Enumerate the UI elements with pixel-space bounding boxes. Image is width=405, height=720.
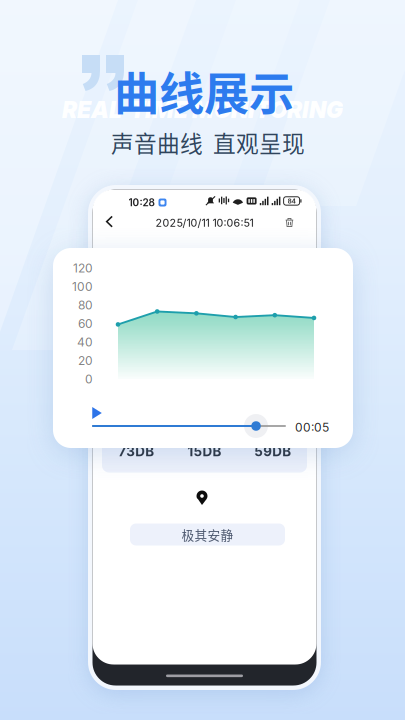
staticText: 曲线展示 bbox=[114, 58, 294, 124]
staticText: 20 bbox=[78, 353, 93, 368]
staticText: 84 bbox=[288, 197, 296, 205]
button[interactable]: Back bbox=[98, 210, 120, 232]
staticText: 73DB bbox=[118, 443, 154, 459]
staticText: 声音曲线 直观呈现 bbox=[111, 126, 305, 159]
staticText: 40 bbox=[77, 335, 93, 349]
staticText: 10:28 bbox=[128, 196, 154, 209]
staticText: REAL-TIME MONITORING bbox=[62, 96, 343, 123]
staticText: 100 bbox=[72, 279, 93, 294]
staticText: 80 bbox=[78, 298, 93, 312]
button[interactable]: Play bbox=[86, 402, 108, 424]
staticText: 极其安静 bbox=[181, 525, 233, 544]
staticText: 00:05 bbox=[295, 420, 329, 434]
staticText: 15DB bbox=[187, 443, 221, 459]
button[interactable]: Delete bbox=[278, 211, 300, 233]
staticText: 0 bbox=[85, 372, 93, 386]
staticText: 2025/10/11 10:06:51 bbox=[155, 216, 253, 229]
staticText: 59DB bbox=[254, 443, 291, 459]
button[interactable]: 极其安静 bbox=[130, 523, 285, 545]
staticText: 60 bbox=[78, 316, 93, 331]
staticText: 120 bbox=[73, 261, 93, 275]
